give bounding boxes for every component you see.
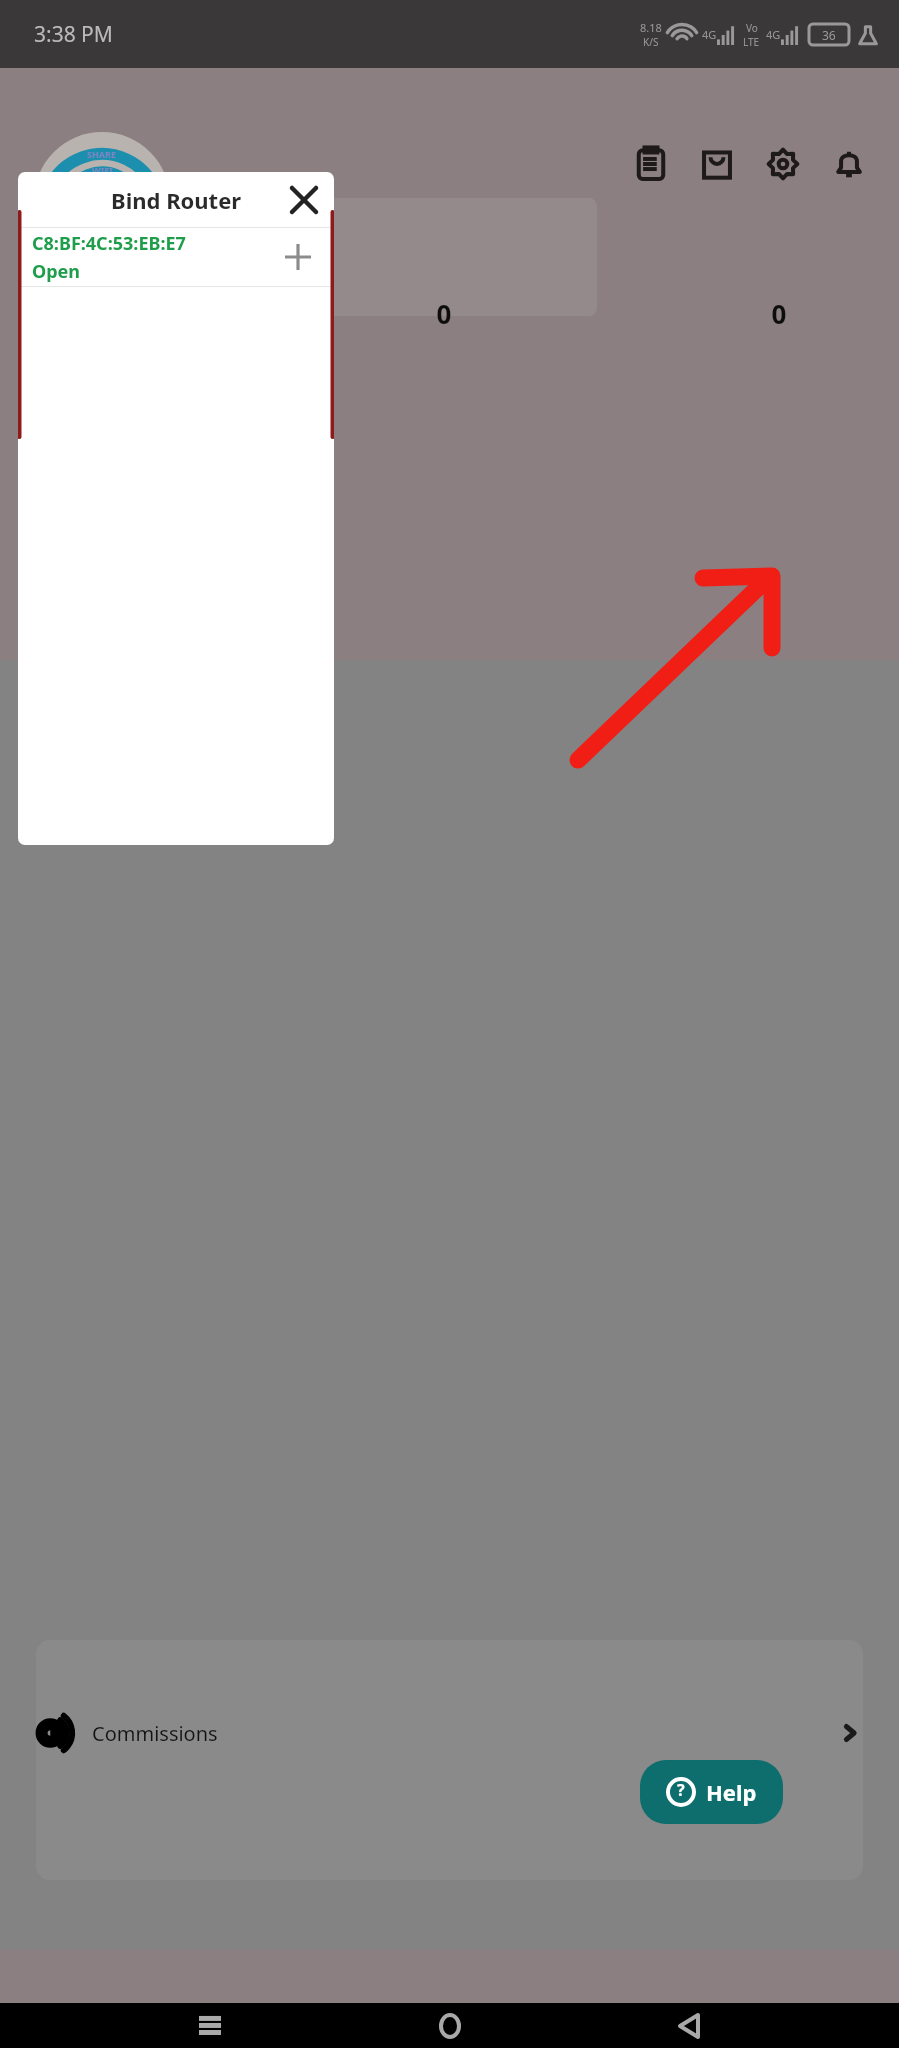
staticText: 0 [719,296,839,331]
staticText: Open [32,259,81,284]
button[interactable]: Notifications [825,140,873,188]
button[interactable]: Home [420,2003,480,2048]
staticText: 3:38 PM [34,20,113,49]
staticText: 4G [702,27,717,42]
staticText: Help [706,1777,757,1807]
button[interactable]: Commissions [36,1688,863,1778]
staticText: Commissions [92,1720,218,1747]
staticText: 0 [384,296,504,331]
staticText: 36 [822,27,836,43]
staticText: C8:BF:4C:53:EB:E7 [32,231,186,256]
staticText: ? [677,1779,685,1801]
staticText: LTE [743,35,760,49]
staticText: 8.18 [640,20,662,35]
staticText: Vo [746,21,758,35]
staticText: WIFI [92,164,113,176]
button[interactable]: Orders [627,140,675,188]
button[interactable]: C8:BF:4C:53:EB:E7 [18,228,334,286]
staticText: Bind Router [111,185,242,215]
staticText: K/S [643,35,659,49]
button[interactable]: Shop [693,140,741,188]
button[interactable]: Add router [276,235,320,279]
button[interactable]: Back [659,2003,719,2048]
button[interactable]: Settings [759,140,807,188]
button[interactable]: Close [282,178,326,222]
staticText: 4G [766,27,781,42]
staticText: SHARE [87,148,117,160]
button[interactable]: Help [640,1760,783,1824]
button[interactable]: Recent apps [180,2003,240,2048]
